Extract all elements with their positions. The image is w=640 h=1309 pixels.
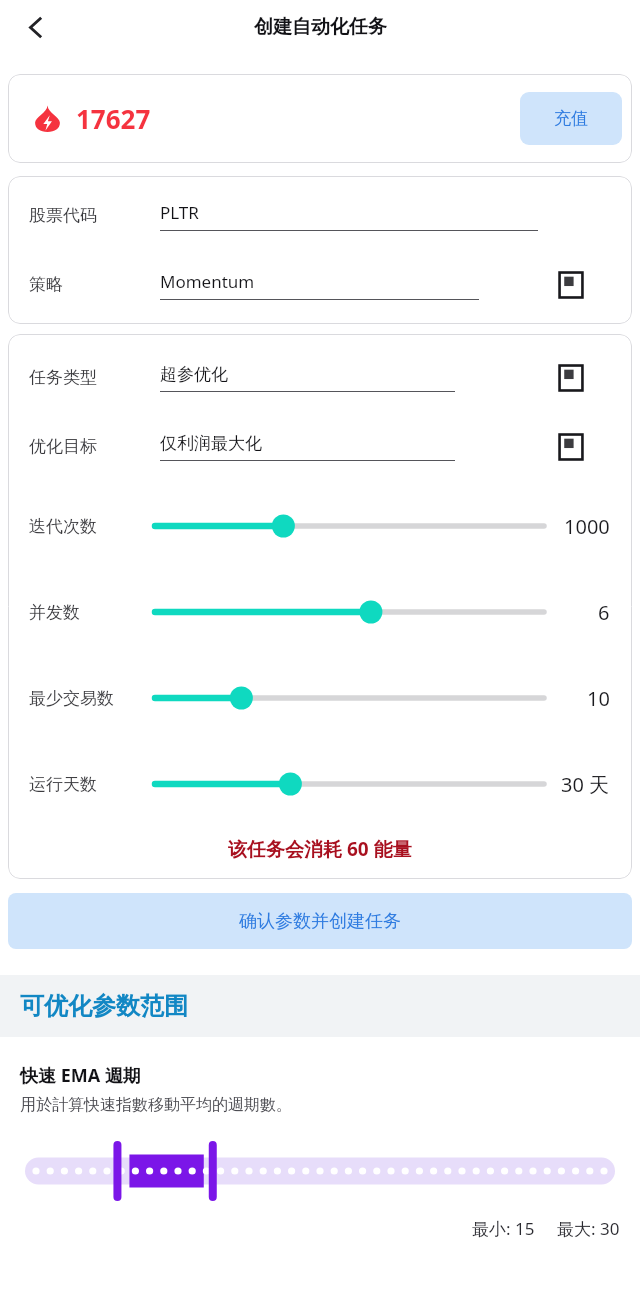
staticText: 用於計算快速指數移動平均的週期數。: [20, 1095, 292, 1115]
button[interactable]: Choose 策略: [553, 267, 589, 303]
button[interactable]: Range slider 15 to 30: [25, 1139, 615, 1203]
staticText: PLTR: [160, 201, 199, 224]
staticText: 创建自动化任务: [254, 15, 387, 39]
button[interactable]: [155, 598, 544, 626]
button[interactable]: Back: [12, 4, 58, 50]
staticText: 最少交易数: [29, 688, 114, 709]
button[interactable]: [155, 684, 544, 712]
staticText: 优化目标: [29, 436, 97, 457]
staticText: 1000: [564, 513, 610, 540]
button[interactable]: [155, 770, 544, 798]
button[interactable]: Choose 优化目标: [553, 429, 589, 465]
staticText: 充值: [554, 108, 588, 129]
staticText: 最小: 15: [472, 1217, 535, 1240]
staticText: 迭代次数: [29, 516, 97, 537]
staticText: 最大: 30: [557, 1217, 620, 1240]
staticText: 该任务会消耗 60 能量: [228, 836, 412, 862]
staticText: 股票代码: [29, 205, 97, 226]
staticText: 超参优化: [160, 364, 228, 385]
staticText: 确认参数并创建任务: [239, 910, 401, 933]
button[interactable]: 充值: [520, 92, 622, 145]
button[interactable]: Choose 任务类型: [553, 360, 589, 396]
staticText: 并发数: [29, 602, 80, 623]
staticText: 策略: [29, 274, 63, 295]
staticText: 30 天: [561, 771, 610, 798]
button[interactable]: 确认参数并创建任务: [8, 893, 632, 949]
staticText: 17627: [76, 101, 151, 136]
staticText: Momentum: [160, 270, 255, 293]
staticText: 仅利润最大化: [160, 433, 262, 454]
staticText: 6: [598, 599, 610, 626]
staticText: 可优化参数范围: [20, 991, 188, 1021]
staticText: 快速 EMA 週期: [20, 1063, 141, 1088]
staticText: 运行天数: [29, 774, 97, 795]
staticText: 任务类型: [29, 367, 97, 388]
staticText: 10: [587, 685, 610, 712]
button[interactable]: [155, 512, 544, 540]
